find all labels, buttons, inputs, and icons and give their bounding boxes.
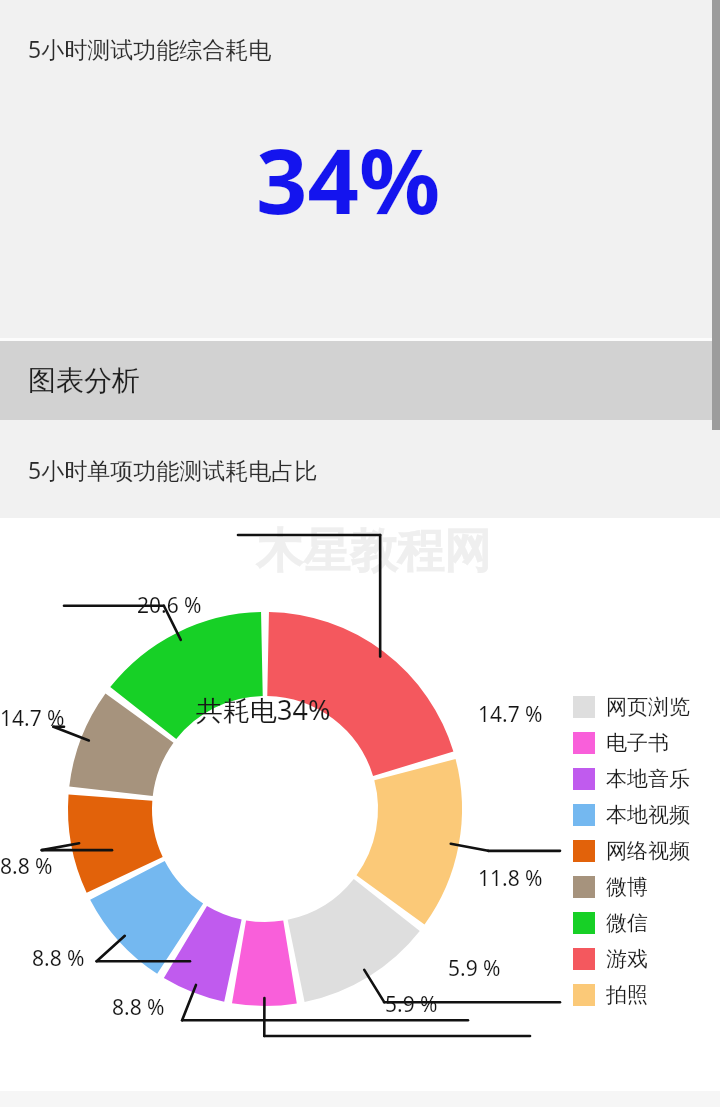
staticText: 图表分析 (28, 363, 140, 398)
staticText: 5.9 % (385, 990, 438, 1019)
button[interactable]: 5小时测试功能综合耗电 (0, 0, 720, 338)
button[interactable]: 网页浏览 (573, 689, 690, 725)
staticText: 8.8 % (112, 993, 165, 1022)
staticText: 11.8 % (478, 864, 543, 893)
staticText: 拍照 (606, 982, 648, 1008)
staticText: 5小时单项功能测试耗电占比 (28, 454, 318, 485)
staticText: 本地音乐 (606, 766, 690, 792)
staticText: 8.8 % (0, 852, 53, 881)
button[interactable]: 微信 (573, 905, 648, 941)
staticText: 14.7 % (0, 704, 65, 733)
staticText: 网络视频 (606, 838, 690, 864)
staticText: 5小时测试功能综合耗电 (28, 33, 272, 64)
staticText: 5.9 % (448, 954, 501, 983)
button[interactable]: 5小时单项功能测试耗电占比 (0, 420, 720, 518)
staticText: 14.7 % (478, 700, 543, 729)
staticText: 本地视频 (606, 802, 690, 828)
staticText: 电子书 (606, 730, 669, 756)
button[interactable]: 拍照 (573, 977, 648, 1013)
staticText: 木星教程网 (256, 522, 491, 581)
button[interactable]: 微博 (573, 869, 648, 905)
button[interactable]: 游戏 (573, 941, 648, 977)
staticText: 网页浏览 (606, 694, 690, 720)
staticText: 8.8 % (32, 944, 85, 973)
button[interactable]: 图表分析 (0, 341, 720, 420)
staticText: 共耗电34% (196, 691, 331, 728)
staticText: 游戏 (606, 946, 648, 972)
staticText: 微博 (606, 874, 648, 900)
staticText: 20.6 % (137, 591, 202, 620)
staticText: 微信 (606, 910, 648, 936)
staticText: 34% (256, 118, 441, 241)
button[interactable]: 电子书 (573, 725, 669, 761)
button[interactable]: 本地视频 (573, 797, 690, 833)
button[interactable]: 本地音乐 (573, 761, 690, 797)
button[interactable]: 网络视频 (573, 833, 690, 869)
